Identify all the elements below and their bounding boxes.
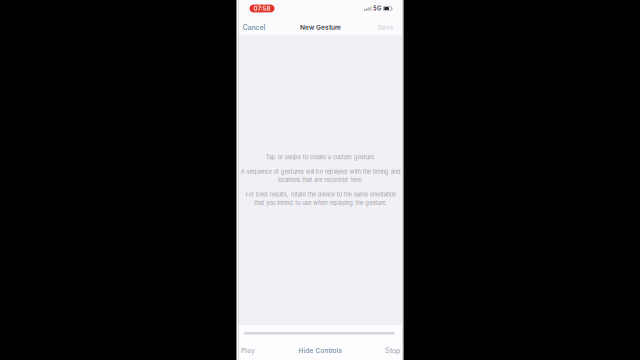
staticText: Cancel — [242, 23, 265, 32]
button[interactable]: Cancel — [238, 19, 272, 36]
staticText: 07:58 — [253, 5, 270, 12]
staticText: Save — [377, 23, 393, 31]
staticText: A sequence of gestures will be replayed … — [240, 168, 400, 183]
staticText: Play — [241, 347, 255, 355]
button[interactable]: Hide Controls — [293, 344, 346, 357]
staticText: For best results, rotate the device to t… — [245, 191, 395, 206]
staticText: New Gesture — [300, 23, 341, 31]
staticText: Stop — [385, 346, 400, 355]
staticText: Hide Controls — [298, 347, 341, 354]
button[interactable]: Stop — [380, 343, 402, 358]
button[interactable]: Save — [371, 19, 400, 35]
button[interactable]: Play — [238, 344, 260, 358]
staticText: Tap or swipe to create a custom gesture. — [265, 154, 375, 160]
staticText: 5G — [373, 5, 381, 12]
